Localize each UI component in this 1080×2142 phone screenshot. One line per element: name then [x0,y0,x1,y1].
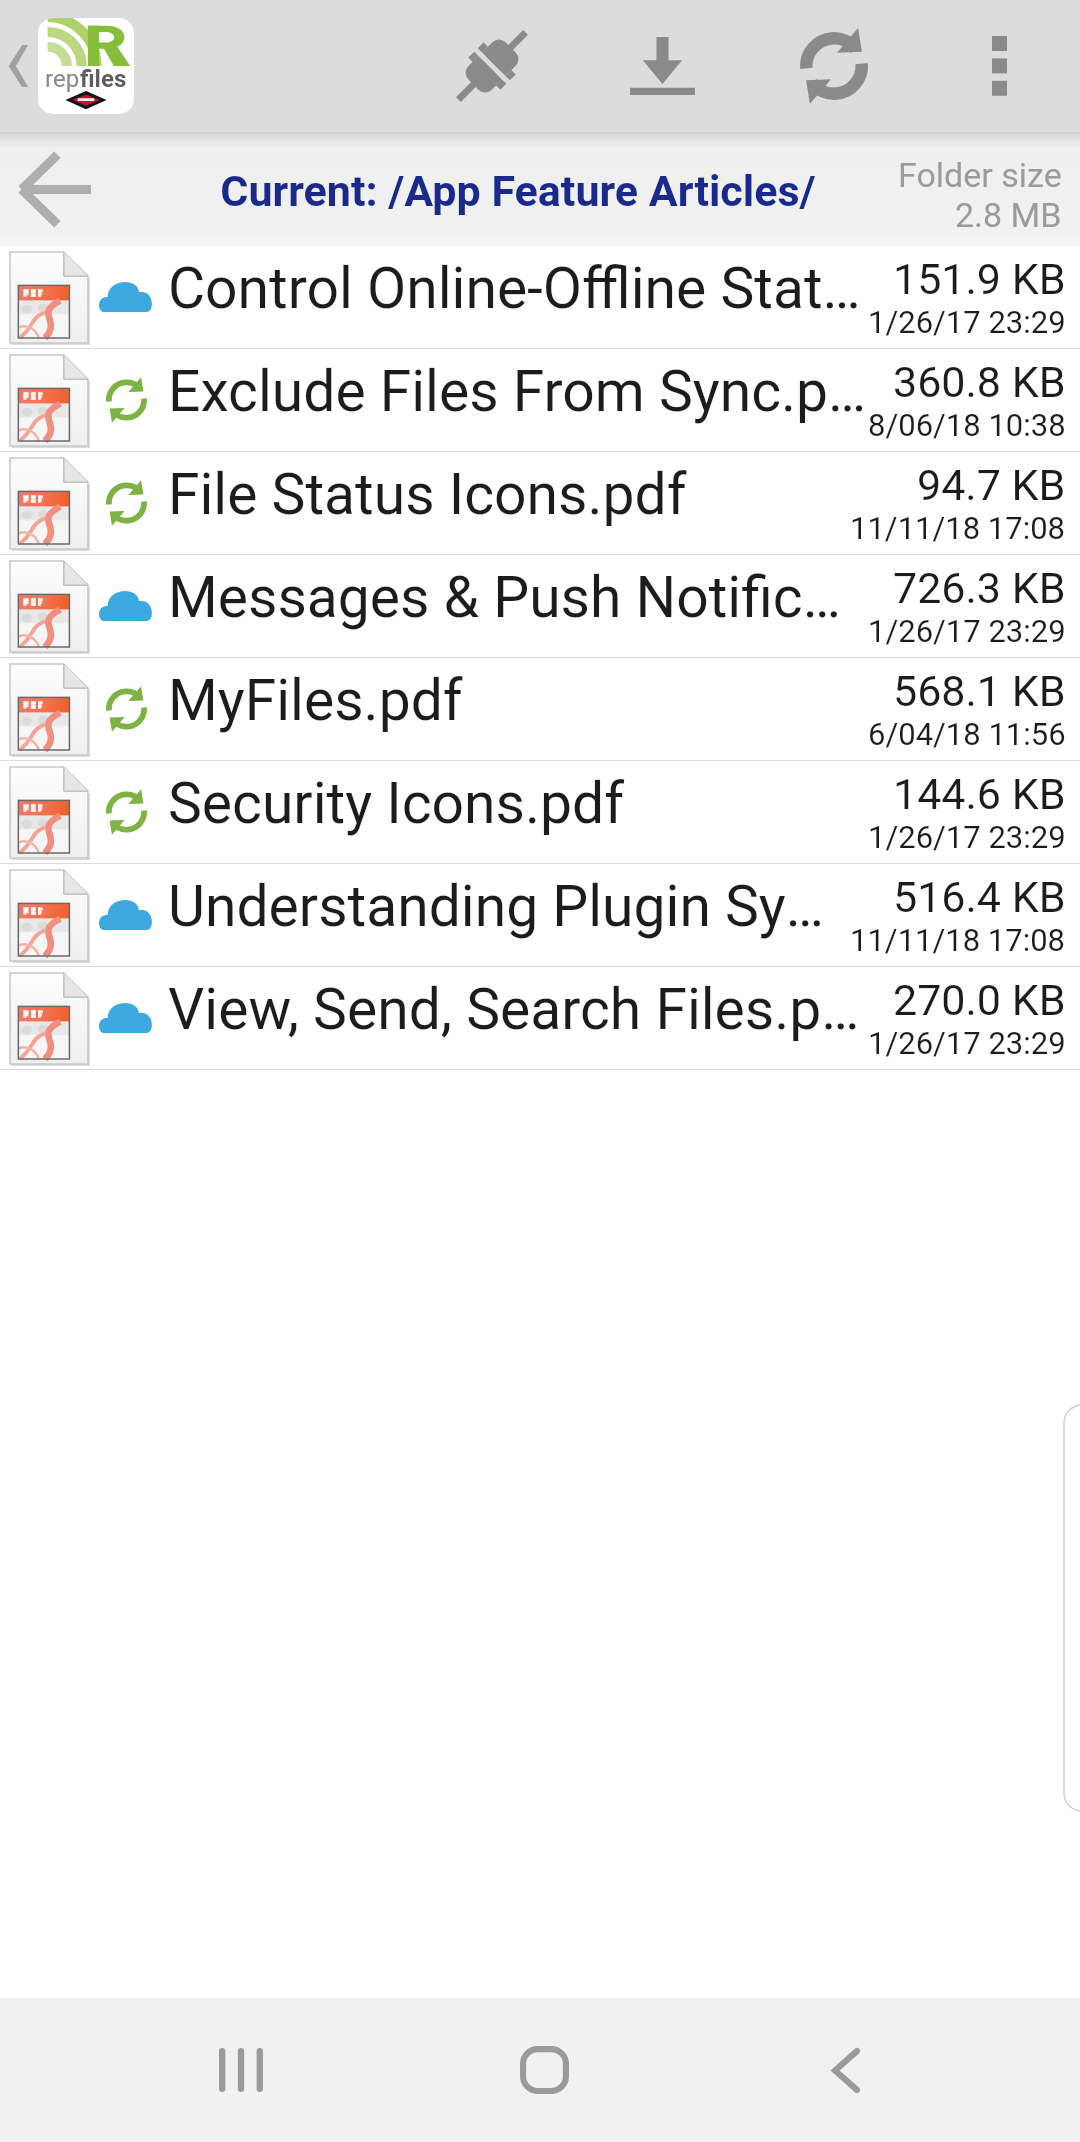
staticText: 1/26/17 23:29 [868,1025,1066,1061]
staticText: 11/11/18 17:08 [850,510,1066,546]
button[interactable]: View, Send, Search Files.p… [0,967,1080,1070]
staticText: MyFiles.pdf [168,667,868,734]
staticText: 1/26/17 23:29 [868,819,1066,855]
button[interactable]: Refresh [748,0,919,132]
button[interactable]: File Status Icons.pdf [0,452,1080,555]
staticText: Folder size [898,155,1062,195]
button[interactable]: Messages & Push Notific… [0,555,1080,658]
staticText: 726.3 KB [893,563,1066,613]
staticText: 8/06/18 10:38 [868,407,1066,443]
button[interactable]: Control Online-Offline Stat… [0,246,1080,349]
staticText: Exclude Files From Sync.p… [168,358,868,425]
staticText: rep [45,65,80,93]
button[interactable]: Understanding Plugin Syn… [0,864,1080,967]
staticText: 11/11/18 17:08 [850,922,1066,958]
button[interactable]: MyFiles.pdf [0,658,1080,761]
other: Up [6,42,32,90]
button[interactable]: Recent apps [151,1998,331,2142]
button[interactable]: Back [756,1998,936,2142]
staticText: Current: /App Feature Articles/ [156,166,880,216]
staticText: 144.6 KB [893,769,1066,819]
staticText: View, Send, Search Files.p… [168,976,868,1043]
staticText: 1/26/17 23:29 [868,613,1066,649]
staticText: 516.4 KB [893,872,1066,922]
staticText: files [80,65,127,93]
staticText: Understanding Plugin Syn… [168,873,850,940]
staticText: 2.8 MB [955,195,1062,235]
staticText: 94.7 KB [917,460,1066,510]
button[interactable]: Home [454,1998,634,2142]
button[interactable]: Connect [406,0,577,132]
staticText: 360.8 KB [893,357,1066,407]
button[interactable]: Back [0,133,109,246]
staticText: 151.9 KB [893,254,1066,304]
staticText: Messages & Push Notific… [168,564,868,631]
button[interactable]: Up [0,8,134,124]
button[interactable]: More options [919,0,1080,132]
staticText: Control Online-Offline Stat… [168,255,868,322]
staticText: 6/04/18 11:56 [868,716,1066,752]
staticText: Security Icons.pdf [168,770,868,837]
button[interactable]: Security Icons.pdf [0,761,1080,864]
button[interactable]: Exclude Files From Sync.p… [0,349,1080,452]
button[interactable]: Download [577,0,748,132]
staticText: 568.1 KB [893,666,1066,716]
staticText: 1/26/17 23:29 [868,304,1066,340]
staticText: File Status Icons.pdf [168,461,850,528]
staticText: 270.0 KB [893,975,1066,1025]
